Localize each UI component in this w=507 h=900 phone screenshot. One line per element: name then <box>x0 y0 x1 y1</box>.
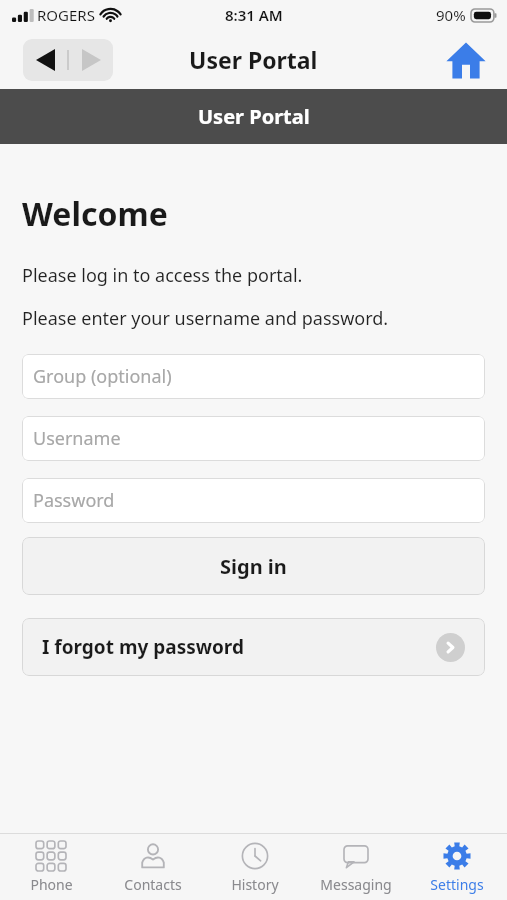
staticText: Group (optional) <box>33 364 172 389</box>
staticText: I forgot my password <box>42 634 436 660</box>
staticText: Sign in <box>220 553 287 580</box>
button[interactable]: Back <box>23 39 67 81</box>
staticText: User Portal <box>198 103 310 130</box>
button[interactable]: Phone <box>0 834 102 900</box>
staticText: 90% <box>436 5 466 25</box>
staticText: 8:31 AM <box>225 5 283 25</box>
button[interactable]: Forward <box>69 39 113 81</box>
staticText: Username <box>33 426 121 451</box>
button[interactable]: Sign in <box>22 537 485 595</box>
button[interactable]: Contacts <box>102 834 204 900</box>
staticText: User Portal <box>189 44 318 75</box>
button[interactable]: Password <box>22 478 485 523</box>
button[interactable]: Settings <box>406 834 507 900</box>
staticText: Please log in to access the portal. <box>22 263 303 288</box>
button[interactable]: Home <box>444 38 488 82</box>
staticText: Please enter your username and password. <box>22 306 389 331</box>
button[interactable]: Username <box>22 416 485 461</box>
staticText: Messaging <box>320 875 392 894</box>
staticText: Welcome <box>22 192 168 236</box>
button[interactable]: Group (optional) <box>22 354 485 399</box>
staticText: Contacts <box>124 875 182 894</box>
staticText: History <box>231 875 279 894</box>
button[interactable]: I forgot my password <box>22 618 485 676</box>
button[interactable]: History <box>204 834 305 900</box>
staticText: ROGERS <box>37 5 95 25</box>
staticText: Phone <box>30 875 73 894</box>
staticText: Settings <box>430 875 484 894</box>
staticText: Password <box>33 488 115 513</box>
button[interactable]: Messaging <box>305 834 406 900</box>
